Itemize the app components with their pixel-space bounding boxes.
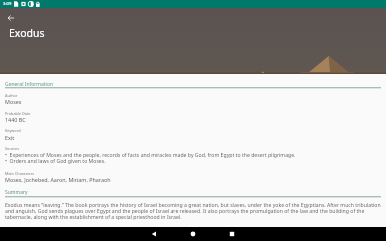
button[interactable]: Home <box>179 227 207 241</box>
staticText: Author <box>5 93 18 98</box>
staticText: 1440 BC <box>5 116 386 123</box>
staticText: 3:09 <box>3 1 12 7</box>
staticText: Summary <box>5 189 28 196</box>
staticText: Exit <box>5 134 386 141</box>
staticText: Moses <box>5 98 386 105</box>
button[interactable]: Recent apps <box>218 227 246 241</box>
button[interactable]: Back <box>140 227 168 241</box>
staticText: General Information <box>5 81 54 88</box>
button[interactable]: General Information <box>5 81 381 90</box>
staticText: Exodus <box>9 26 45 40</box>
button[interactable]: Navigate up <box>3 10 18 25</box>
staticText: Exodus means “leaving.” The book portray… <box>5 201 386 220</box>
button[interactable]: Summary <box>5 189 381 198</box>
staticText: Main Characters <box>5 171 35 176</box>
staticText: Sources <box>5 146 20 151</box>
staticText: Probable Date <box>5 111 31 116</box>
staticText: • Experiences of Moses and the people, r… <box>5 151 386 164</box>
staticText: Moses, Jochebed, Aaron, Miriam, Pharaoh <box>5 176 386 183</box>
staticText: Keyword <box>5 128 21 133</box>
